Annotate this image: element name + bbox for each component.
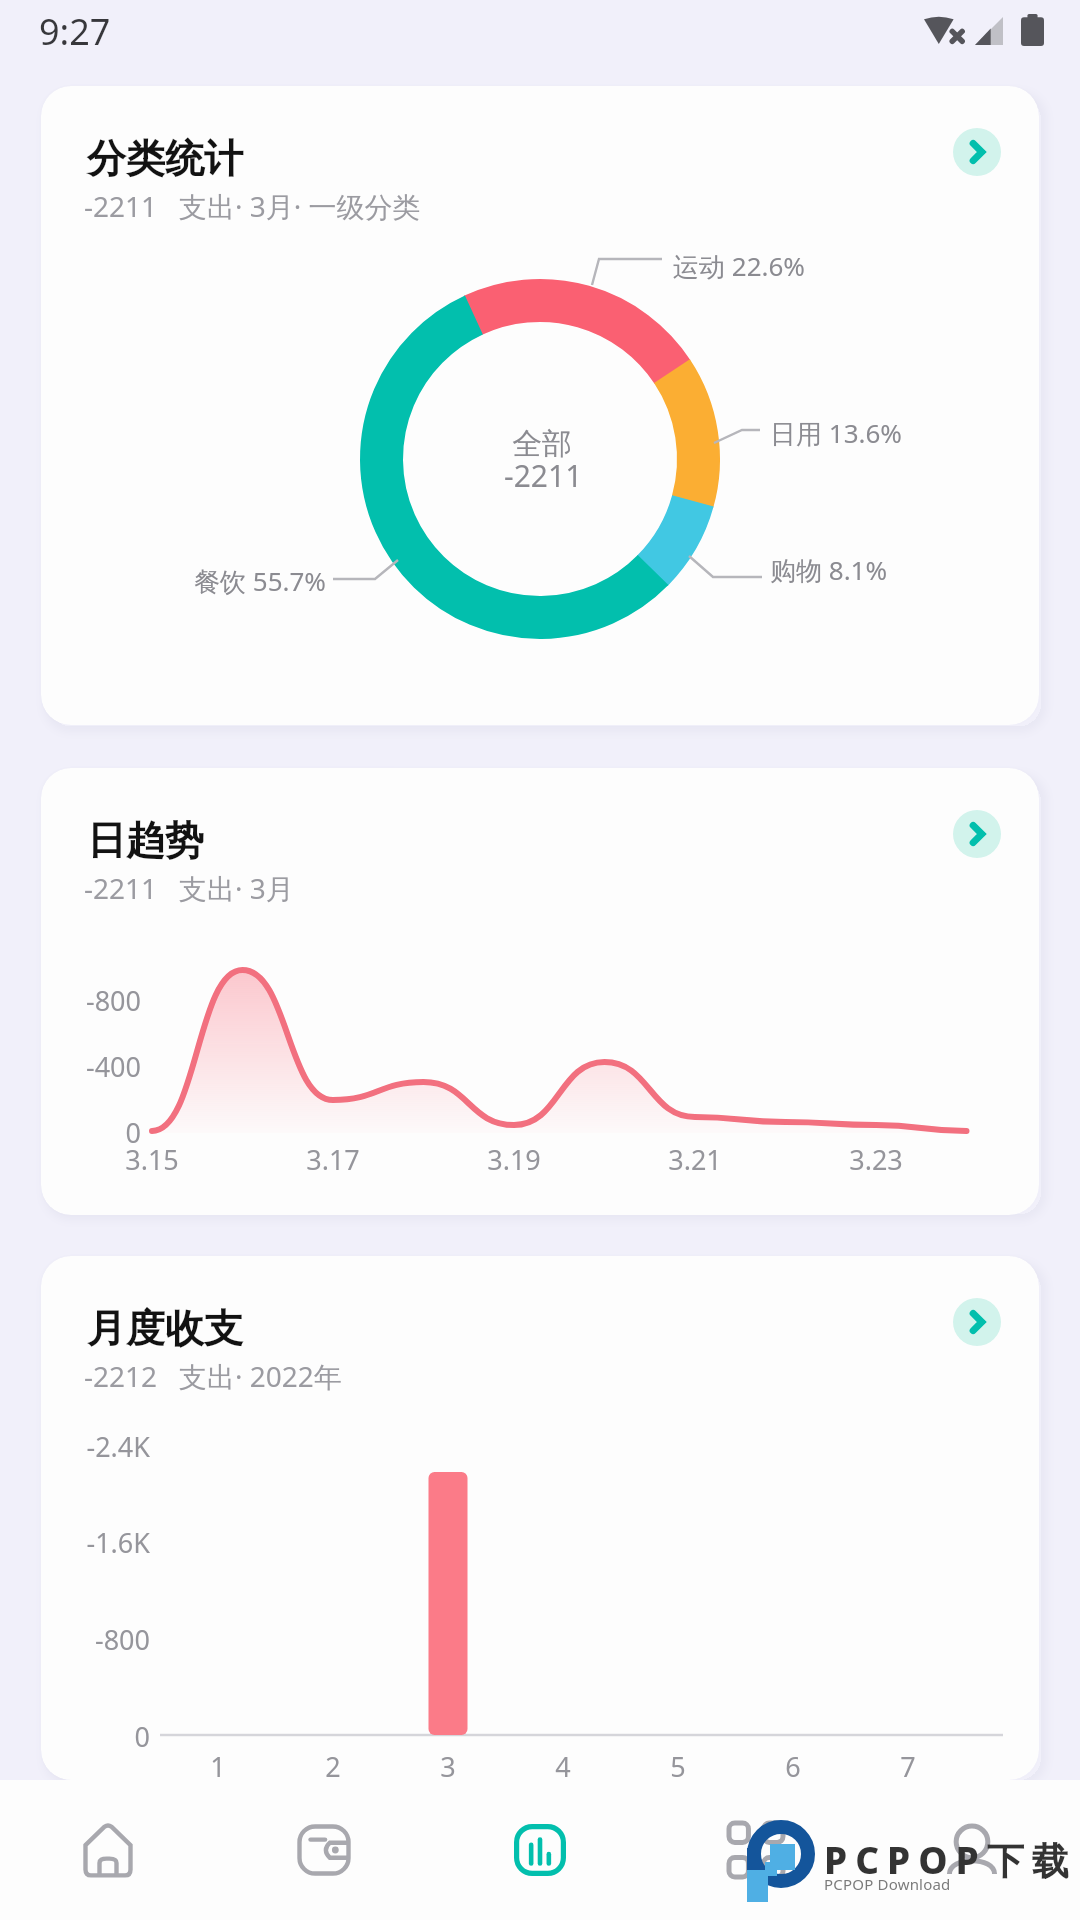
staticText: PCPOP Download <box>824 1874 951 1894</box>
staticText: -2212 支出· 2022年 <box>84 1357 342 1395</box>
staticText: -2211 支出· 3月· 一级分类 <box>84 187 421 225</box>
button[interactable]: Detail <box>953 810 1001 858</box>
staticText: 3.15 <box>72 1141 232 1178</box>
staticText: 购物 8.1% <box>770 552 888 588</box>
staticText: -2.4K <box>41 1428 150 1465</box>
staticText: 4 <box>483 1748 643 1780</box>
staticText: 3.23 <box>796 1141 956 1178</box>
staticText: 分类统计 <box>87 134 243 183</box>
button[interactable]: Profile <box>864 1780 1080 1920</box>
staticText: -2211 支出· 3月 <box>84 869 294 907</box>
button[interactable]: Categories <box>648 1780 864 1920</box>
staticText: 3 <box>368 1748 528 1780</box>
staticText: 运动 22.6% <box>673 248 805 284</box>
staticText: 3.19 <box>434 1141 594 1178</box>
staticText: 全部 <box>512 425 572 463</box>
button[interactable]: 日趋势 <box>41 768 1039 1215</box>
button[interactable]: Home <box>0 1780 216 1920</box>
staticText: 日趋势 <box>87 816 204 865</box>
staticText: -400 <box>41 1048 141 1085</box>
staticText: 餐饮 55.7% <box>194 563 326 599</box>
staticText: 3.21 <box>615 1141 775 1178</box>
staticText: -800 <box>41 982 141 1019</box>
button[interactable]: 月度收支 <box>41 1256 1039 1780</box>
staticText: 7 <box>828 1748 988 1780</box>
staticText: 日用 13.6% <box>770 415 902 451</box>
staticText: 2 <box>253 1748 413 1780</box>
staticText: -2211 <box>504 455 583 496</box>
staticText: 6 <box>713 1748 873 1780</box>
button[interactable]: Charts <box>432 1780 648 1920</box>
staticText: 9:27 <box>39 7 111 56</box>
button[interactable]: Detail <box>953 128 1001 176</box>
button[interactable]: 分类统计 <box>41 86 1039 725</box>
staticText: 0 <box>41 1114 141 1151</box>
staticText: 3.17 <box>253 1141 413 1178</box>
staticText: PCPOP下载 <box>824 1834 1077 1885</box>
staticText: -800 <box>41 1621 150 1658</box>
staticText: 1 <box>138 1748 298 1780</box>
staticText: -1.6K <box>41 1524 150 1561</box>
staticText: 月度收支 <box>87 1304 243 1353</box>
button[interactable]: Wallet <box>216 1780 432 1920</box>
staticText: 0 <box>41 1718 150 1755</box>
button[interactable]: Detail <box>953 1298 1001 1346</box>
staticText: 5 <box>598 1748 758 1780</box>
